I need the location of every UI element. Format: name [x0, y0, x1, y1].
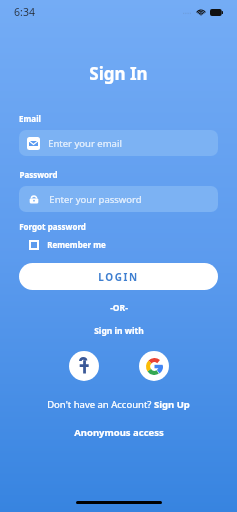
- staticText: 6:34: [14, 5, 35, 19]
- button[interactable]: Don't have an Account? Sign Up: [0, 398, 237, 411]
- button[interactable]: Enter your email: [19, 130, 218, 156]
- button[interactable]: Forgot password: [19, 221, 86, 232]
- button[interactable]: LOGIN: [19, 263, 218, 290]
- button[interactable]: Anonymous access: [0, 426, 237, 439]
- staticText: Enter your password: [49, 193, 142, 206]
- staticText: Enter your email: [48, 137, 122, 150]
- staticText: Sign in with: [94, 325, 144, 337]
- staticText: Remember me: [47, 239, 106, 250]
- staticText: Email: [19, 113, 41, 124]
- staticText: Don't have an Account? Sign Up: [47, 398, 190, 411]
- staticText: Sign In: [89, 62, 148, 85]
- staticText: -OR-: [110, 302, 128, 314]
- staticText: Anonymous access: [74, 426, 164, 439]
- button[interactable]: Enter your password: [19, 186, 218, 212]
- staticText: Forgot password: [19, 221, 86, 232]
- button[interactable]: Remember me: [29, 239, 106, 250]
- button[interactable]: Sign in with Google: [139, 351, 169, 381]
- staticText: LOGIN: [98, 270, 139, 284]
- staticText: Password: [19, 169, 58, 180]
- button[interactable]: Sign in with Facebook: [69, 351, 99, 381]
